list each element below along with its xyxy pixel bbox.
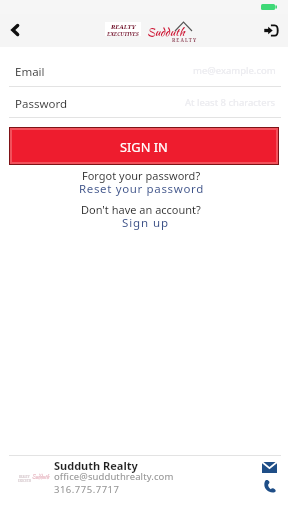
staticText: Email: [15, 64, 45, 80]
staticText: At least 8 characters: [185, 96, 276, 109]
staticText: office@sudduthrealty.com: [54, 470, 174, 483]
button[interactable]: Sign in: [259, 18, 283, 42]
staticText: Sudduth: [32, 474, 50, 481]
button[interactable]: Call: [256, 475, 283, 498]
staticText: REALTY: [19, 475, 30, 479]
staticText: Forgot your password?: [82, 168, 201, 183]
staticText: Password: [15, 96, 68, 112]
staticText: SIGN IN: [120, 138, 168, 155]
button[interactable]: Email: [256, 456, 283, 478]
staticText: 316.775.7717: [54, 483, 120, 496]
staticText: REALTY: [172, 37, 198, 43]
button[interactable]: Sign up: [122, 215, 169, 231]
staticText: EXECUTIVES: [107, 31, 139, 38]
staticText: REALTY: [111, 23, 136, 31]
button[interactable]: Back: [3, 18, 27, 42]
staticText: Sudduth Realty: [54, 458, 138, 473]
staticText: Reset your password: [79, 181, 204, 197]
staticText: Don't have an account?: [81, 202, 201, 217]
staticText: Sign up: [122, 215, 169, 231]
staticText: me@example.com: [193, 64, 276, 77]
staticText: EXECUTIVES: [18, 479, 31, 483]
button[interactable]: SIGN IN: [12, 130, 276, 162]
staticText: Sudduth: [147, 24, 185, 40]
button[interactable]: Reset your password: [79, 181, 204, 197]
